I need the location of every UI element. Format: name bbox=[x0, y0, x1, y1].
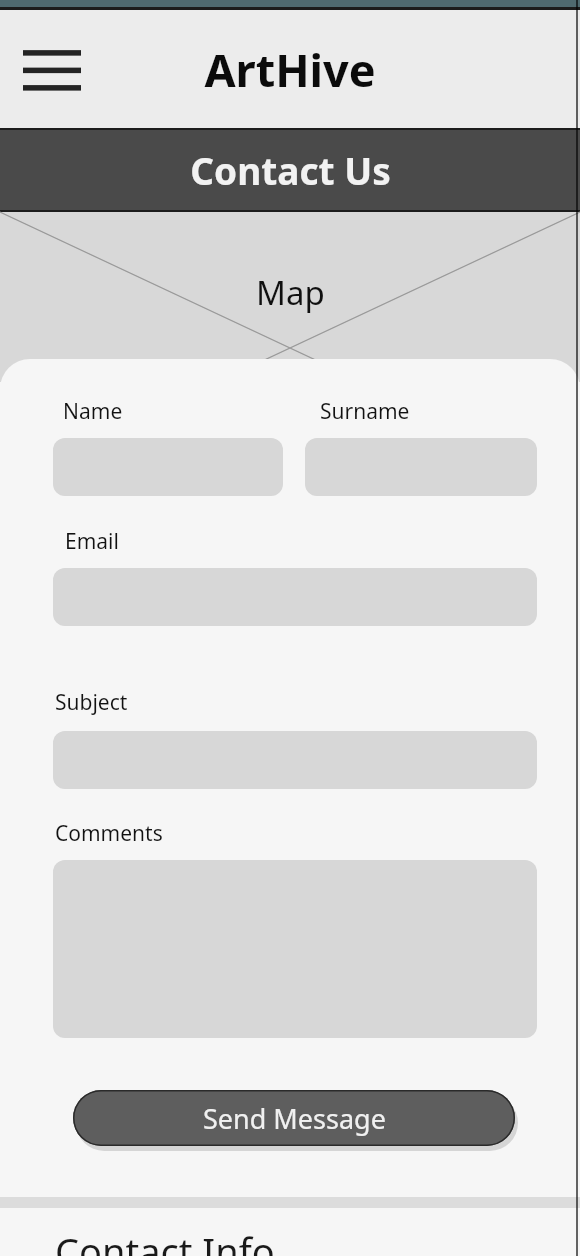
staticText: Name bbox=[63, 397, 123, 426]
staticText: Send Message bbox=[203, 1100, 386, 1137]
staticText: Surname bbox=[320, 397, 410, 426]
staticText: Map bbox=[256, 270, 325, 315]
staticText: ArtHive bbox=[204, 39, 376, 100]
staticText: Contact Us bbox=[190, 145, 391, 195]
staticText: Email bbox=[65, 527, 119, 556]
button[interactable]: Open navigation menu bbox=[16, 37, 88, 101]
button[interactable]: Send Message bbox=[73, 1090, 515, 1146]
staticText: Contact Info bbox=[55, 1225, 275, 1256]
staticText: Subject bbox=[55, 688, 128, 717]
button[interactable]: Map bbox=[0, 212, 580, 382]
staticText: Comments bbox=[55, 819, 163, 848]
